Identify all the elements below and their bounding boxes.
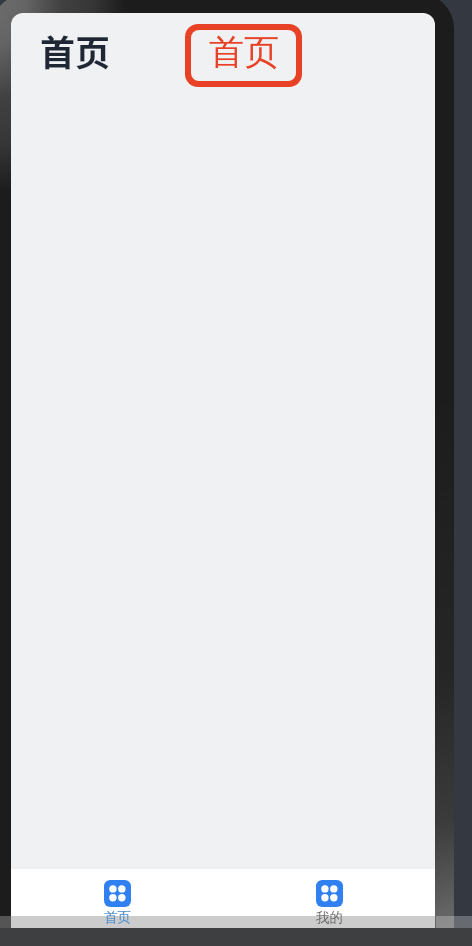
button[interactable]: 我的 bbox=[223, 869, 435, 928]
staticText: 首页 bbox=[209, 30, 279, 74]
button[interactable]: 首页 bbox=[11, 869, 223, 928]
staticText: 我的 bbox=[316, 909, 343, 926]
button[interactable]: 首页 bbox=[185, 24, 302, 87]
staticText: 首页 bbox=[104, 909, 131, 926]
staticText: 首页 bbox=[40, 25, 111, 76]
